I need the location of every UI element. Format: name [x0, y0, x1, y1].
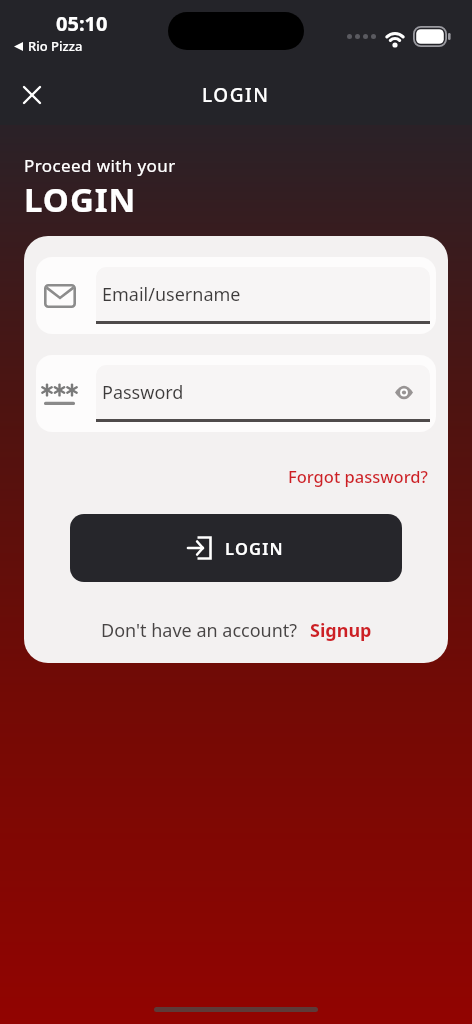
button[interactable]: Password	[36, 355, 436, 432]
button[interactable]: LOGIN	[70, 514, 402, 582]
staticText: Password	[102, 380, 184, 405]
button[interactable]	[16, 79, 48, 111]
staticText: Don't have an account?	[101, 618, 298, 643]
button[interactable]: Forgot password?	[288, 465, 428, 487]
button[interactable]: Email/username	[36, 257, 436, 334]
staticText: Rio Pizza	[28, 37, 83, 55]
staticText: Proceed with your	[24, 154, 176, 177]
staticText: Signup	[310, 618, 372, 643]
staticText: LOGIN	[225, 537, 284, 559]
staticText: LOGIN	[202, 82, 270, 108]
button[interactable]: Don't have an account?	[101, 618, 372, 643]
staticText: Email/username	[102, 282, 241, 307]
staticText: LOGIN	[24, 177, 137, 222]
staticText: 05:10	[56, 10, 108, 37]
